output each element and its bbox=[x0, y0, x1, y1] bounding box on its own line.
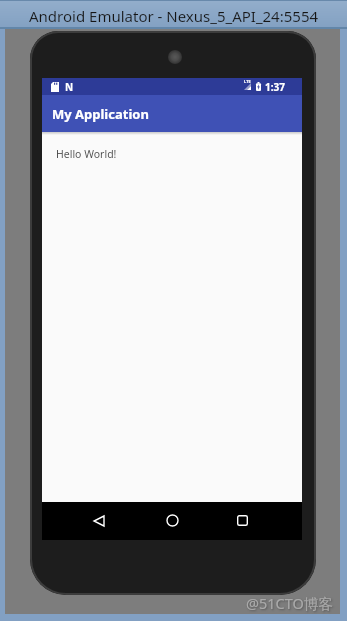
staticText: 1:37 bbox=[265, 80, 285, 94]
button[interactable]: My Application bbox=[42, 95, 302, 132]
button[interactable] bbox=[166, 514, 179, 527]
staticText: Hello World! bbox=[56, 147, 117, 161]
staticText: LTE bbox=[244, 79, 251, 84]
staticText: Android Emulator - Nexus_5_API_24:5554 bbox=[29, 6, 319, 26]
button[interactable] bbox=[93, 515, 105, 527]
button[interactable] bbox=[237, 515, 248, 526]
staticText: N bbox=[65, 80, 74, 94]
staticText: @51CTO博客 bbox=[246, 593, 333, 613]
staticText: My Application bbox=[52, 105, 149, 123]
